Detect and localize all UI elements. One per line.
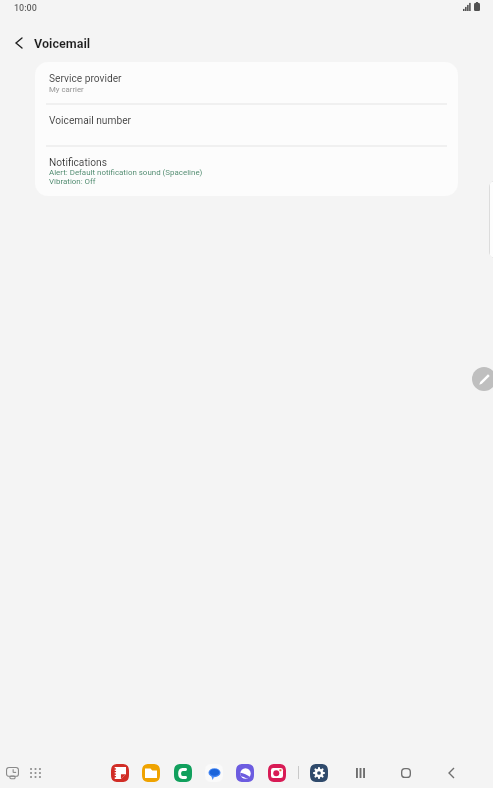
button[interactable]: Voicemail number [35,105,458,145]
staticText: 10:00 [14,3,37,14]
button[interactable]: Back [439,761,463,785]
staticText: Voicemail [34,36,91,51]
button[interactable]: Phone [171,761,195,785]
button[interactable]: Recent files [0,761,24,785]
staticText: Vibration: Off [49,177,96,186]
staticText: Notifications [49,157,107,169]
button[interactable]: Navigate up [3,27,35,59]
button[interactable]: Messages [202,761,226,785]
button[interactable]: Settings [307,761,331,785]
button[interactable]: Samsung Notes [108,761,132,785]
button[interactable]: Camera [265,761,289,785]
button[interactable]: Home [394,761,418,785]
button[interactable]: Apps [23,761,47,785]
button[interactable]: Notifications [35,147,458,196]
button[interactable]: Internet [233,761,257,785]
staticText: My carrier [49,85,84,94]
button[interactable]: Recents [348,761,372,785]
button[interactable]: Service provider [35,62,458,103]
staticText: Alert: Default notification sound (Space… [49,168,203,177]
staticText: Service provider [49,73,122,85]
button[interactable]: Edit [472,367,493,391]
staticText: Voicemail number [49,115,131,127]
button[interactable]: My Files [139,761,163,785]
